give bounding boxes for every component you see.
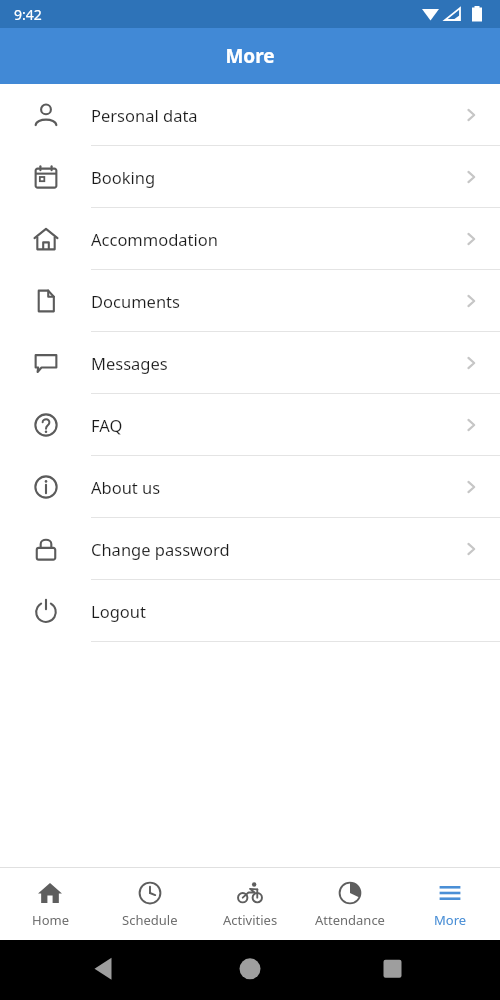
button[interactable]: Schedule (100, 868, 200, 940)
staticText: Schedule (122, 911, 178, 929)
button[interactable]: About us (0, 456, 500, 518)
button[interactable]: Activities (200, 868, 300, 940)
staticText: Logout (91, 600, 451, 622)
staticText: Change password (91, 538, 451, 560)
staticText: More (225, 43, 275, 69)
button[interactable]: Logout (0, 580, 500, 642)
button[interactable]: Booking (0, 146, 500, 208)
staticText: 9:42 (14, 5, 42, 24)
button[interactable]: Attendance (300, 868, 400, 940)
button[interactable]: Documents (0, 270, 500, 332)
staticText: Attendance (315, 911, 385, 929)
staticText: Documents (91, 290, 451, 312)
staticText: Booking (91, 166, 451, 188)
button[interactable]: FAQ (0, 394, 500, 456)
staticText: Messages (91, 352, 451, 374)
button[interactable]: Accommodation (0, 208, 500, 270)
button[interactable]: Personal data (0, 84, 500, 146)
button[interactable]: Home (0, 868, 100, 940)
staticText: About us (91, 476, 451, 498)
button[interactable]: Change password (0, 518, 500, 580)
staticText: Activities (223, 911, 278, 929)
button[interactable]: Messages (0, 332, 500, 394)
staticText: Accommodation (91, 228, 451, 250)
button[interactable]: More (400, 868, 500, 940)
staticText: More (434, 911, 467, 929)
staticText: FAQ (91, 414, 451, 436)
staticText: Personal data (91, 104, 451, 126)
staticText: Home (32, 911, 69, 929)
